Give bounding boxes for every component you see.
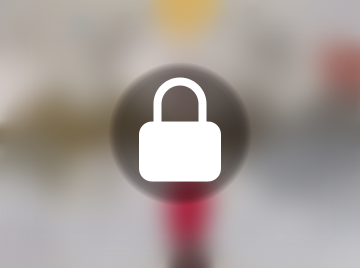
button[interactable]: Locked xyxy=(0,0,360,268)
